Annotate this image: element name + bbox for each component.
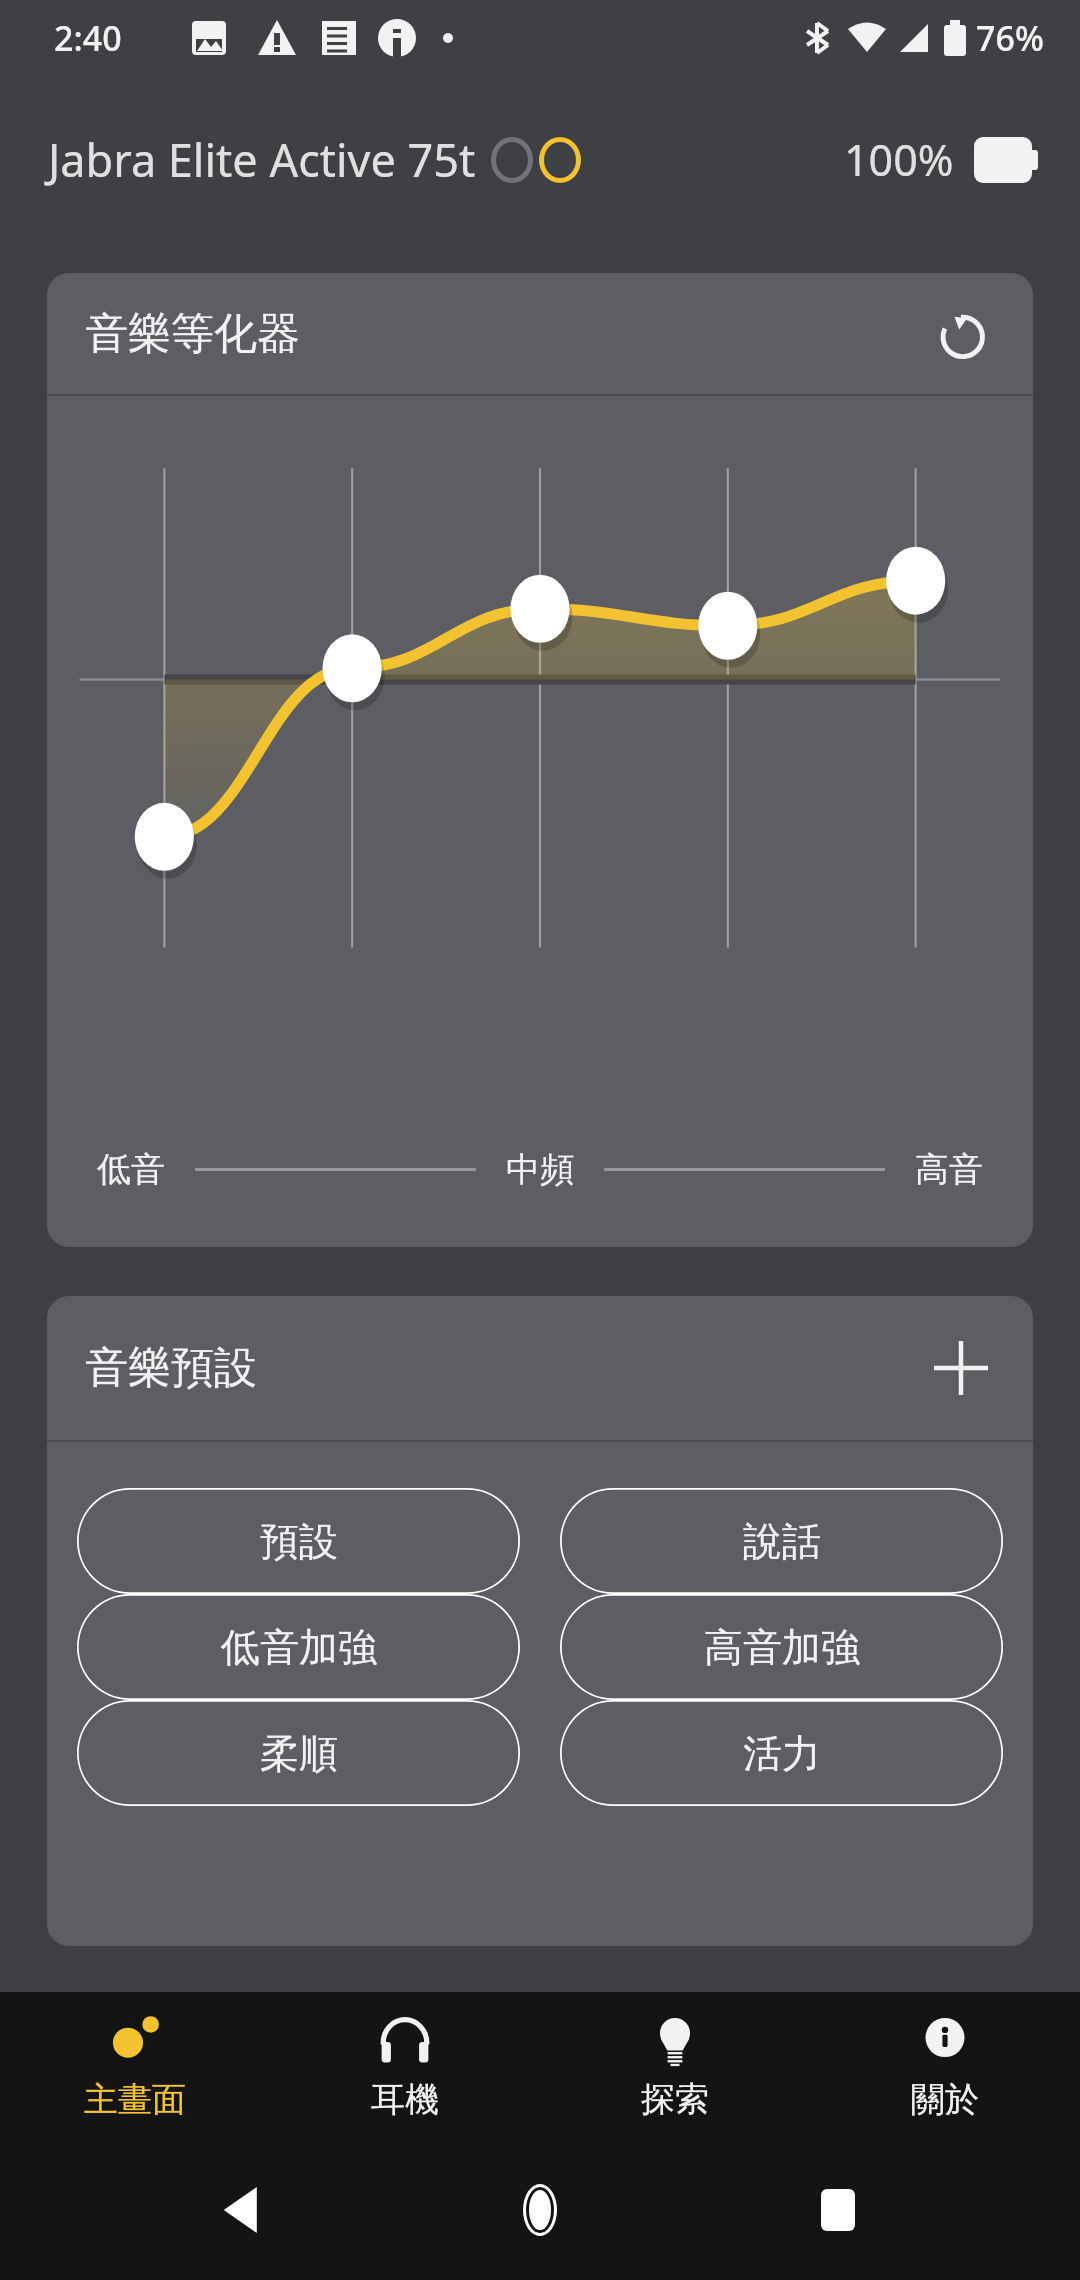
button[interactable]: 高音加強: [560, 1594, 1003, 1700]
staticText: 活力: [743, 1729, 821, 1778]
button[interactable]: 主畫面: [0, 1992, 270, 2140]
staticText: 耳機: [371, 2078, 439, 2121]
button[interactable]: Reset equalizer: [923, 296, 999, 372]
staticText: 音樂預設: [85, 1341, 257, 1395]
staticText: 高音: [915, 1148, 983, 1191]
button[interactable]: Recent apps: [783, 2155, 893, 2265]
button[interactable]: 耳機: [270, 1992, 540, 2140]
staticText: 2:40: [54, 15, 122, 61]
button[interactable]: Home: [485, 2155, 595, 2265]
button[interactable]: 柔順: [77, 1700, 520, 1806]
button[interactable]: 活力: [560, 1700, 1003, 1806]
button[interactable]: 關於: [810, 1992, 1080, 2140]
button[interactable]: 預設: [77, 1488, 520, 1594]
staticText: Jabra Elite Active 75t: [48, 129, 476, 190]
button[interactable]: 說話: [560, 1488, 1003, 1594]
staticText: 主畫面: [84, 2078, 186, 2121]
button[interactable]: Back: [188, 2155, 298, 2265]
staticText: 柔順: [260, 1729, 338, 1778]
button[interactable]: 探索: [540, 1992, 810, 2140]
staticText: 高音加強: [704, 1623, 860, 1672]
staticText: 100%: [844, 130, 954, 189]
staticText: 預設: [260, 1517, 338, 1566]
button[interactable]: Add preset: [923, 1330, 999, 1406]
staticText: 76%: [976, 15, 1044, 61]
staticText: 低音: [97, 1148, 165, 1191]
staticText: 說話: [743, 1517, 821, 1566]
staticText: 關於: [911, 2078, 979, 2121]
staticText: 探索: [641, 2078, 709, 2121]
button[interactable]: 低音加強: [77, 1594, 520, 1700]
staticText: 音樂等化器: [85, 307, 300, 361]
staticText: 低音加強: [221, 1623, 377, 1672]
staticText: 中頻: [506, 1148, 574, 1191]
